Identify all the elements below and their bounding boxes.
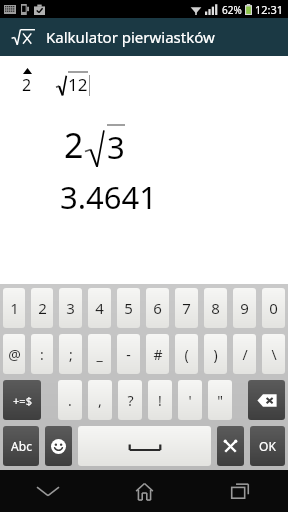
staticText: 3	[107, 126, 125, 168]
button[interactable]: _	[88, 334, 111, 374]
staticText: )	[213, 345, 218, 364]
button[interactable]: 3	[59, 288, 82, 328]
button[interactable]: :	[31, 334, 53, 374]
button[interactable]: -	[117, 334, 140, 374]
button[interactable]: Emoji	[45, 426, 72, 466]
staticText: 8	[211, 298, 220, 318]
staticText: ;	[69, 345, 73, 364]
button[interactable]: .	[58, 380, 82, 420]
staticText: #	[153, 345, 163, 364]
staticText: /	[242, 345, 248, 364]
button[interactable]: ,	[88, 380, 112, 420]
button[interactable]: 0	[262, 288, 285, 328]
button[interactable]: Settings	[217, 426, 244, 466]
button[interactable]: (	[175, 334, 198, 374]
staticText: '	[188, 391, 192, 410]
staticText: ,	[98, 391, 102, 410]
staticText: 3	[66, 298, 75, 318]
button[interactable]: "	[208, 380, 232, 420]
staticText: 5	[124, 298, 133, 318]
button[interactable]: Space	[78, 426, 211, 466]
staticText: @	[8, 345, 21, 364]
staticText: Abc	[11, 438, 32, 454]
staticText: 3.4641	[60, 176, 157, 218]
button[interactable]: @	[3, 334, 25, 374]
staticText: -	[126, 345, 131, 364]
button[interactable]: 1	[3, 288, 25, 328]
button[interactable]: 2	[31, 288, 53, 328]
button[interactable]: /	[233, 334, 256, 374]
staticText: 2	[38, 298, 47, 318]
staticText: 9	[240, 298, 249, 318]
staticText: \	[271, 345, 277, 364]
staticText: 62%	[222, 3, 242, 17]
staticText: 2	[22, 74, 32, 96]
button[interactable]: +=$	[3, 380, 41, 420]
button[interactable]: OK	[250, 426, 285, 466]
button[interactable]: ;	[59, 334, 82, 374]
staticText: 12:31	[255, 2, 284, 17]
staticText: !	[158, 391, 162, 410]
staticText: .	[68, 391, 72, 410]
button[interactable]: Recent apps	[192, 470, 288, 512]
staticText: OK	[259, 438, 276, 454]
staticText: ?	[127, 391, 134, 410]
button[interactable]: App icon	[10, 24, 36, 50]
button[interactable]: 5	[117, 288, 140, 328]
button[interactable]: Abc	[3, 426, 39, 466]
button[interactable]: 4	[88, 288, 111, 328]
button[interactable]: Hide keyboard	[0, 470, 96, 512]
button[interactable]: #	[146, 334, 169, 374]
button[interactable]: 7	[175, 288, 198, 328]
staticText: 7	[182, 298, 191, 318]
staticText: :	[40, 345, 44, 364]
button[interactable]: 8	[204, 288, 227, 328]
staticText: 12	[68, 73, 88, 96]
staticText: (	[184, 345, 189, 364]
staticText: Kalkulator pierwiastków	[46, 27, 215, 47]
button[interactable]: 6	[146, 288, 169, 328]
button[interactable]: '	[178, 380, 202, 420]
button[interactable]: ?	[118, 380, 142, 420]
staticText: 6	[153, 298, 162, 318]
staticText: 4	[95, 298, 104, 318]
staticText: 0	[269, 298, 278, 318]
staticText: 1	[10, 298, 19, 318]
staticText: 2	[64, 122, 84, 168]
staticText: +=$	[13, 393, 32, 408]
button[interactable]: 9	[233, 288, 256, 328]
button[interactable]: !	[148, 380, 172, 420]
button[interactable]: \	[262, 334, 285, 374]
button[interactable]: Delete	[248, 380, 285, 420]
button[interactable]: )	[204, 334, 227, 374]
button[interactable]: Home	[96, 470, 192, 512]
staticText: "	[217, 391, 223, 410]
staticText: _	[96, 345, 103, 364]
